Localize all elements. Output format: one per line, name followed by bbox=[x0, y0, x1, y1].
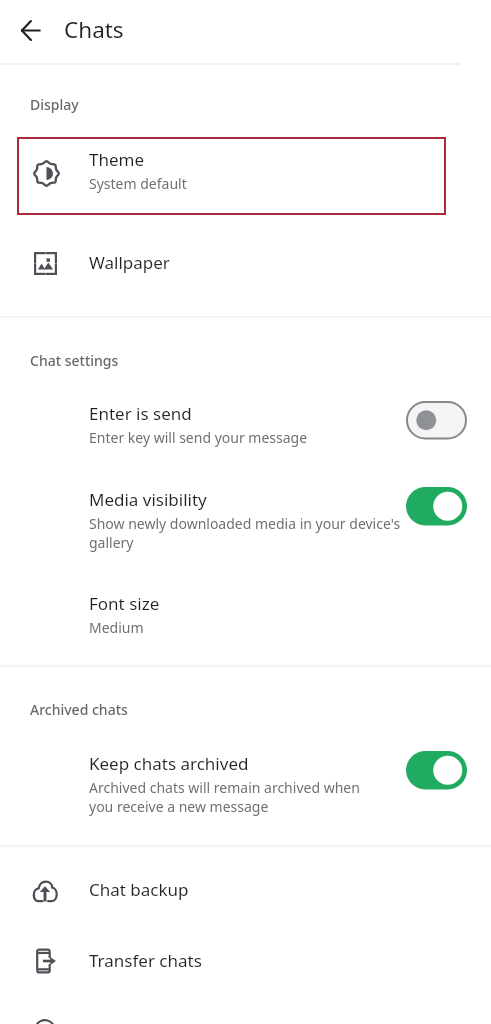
staticText: Chat backup bbox=[89, 878, 189, 901]
staticText: Archived chats bbox=[30, 700, 128, 719]
staticText: Medium bbox=[89, 618, 144, 637]
button[interactable]: Back bbox=[10, 10, 50, 50]
button[interactable]: Enter is send bbox=[0, 397, 491, 459]
button[interactable]: Chat backup bbox=[0, 861, 491, 923]
button[interactable]: Chat history bbox=[0, 1001, 491, 1024]
staticText: Enter is send bbox=[89, 402, 192, 425]
staticText: Font size bbox=[89, 592, 160, 615]
staticText: Transfer chats bbox=[89, 949, 202, 972]
staticText: Archived chats will remain archived when… bbox=[89, 778, 360, 816]
button[interactable]: Font size bbox=[0, 587, 491, 649]
button[interactable]: Wallpaper bbox=[0, 232, 491, 294]
staticText: Chats bbox=[64, 14, 124, 45]
button[interactable]: Transfer chats bbox=[0, 932, 491, 994]
staticText: Theme bbox=[89, 148, 145, 171]
staticText: System default bbox=[89, 174, 187, 193]
button[interactable]: Keep chats archived bbox=[0, 747, 491, 829]
button[interactable]: Media visibility bbox=[0, 483, 491, 563]
staticText: Display bbox=[30, 95, 79, 114]
staticText: Enter key will send your message bbox=[89, 428, 308, 447]
button[interactable]: Theme bbox=[17, 137, 446, 215]
staticText: Media visibility bbox=[89, 488, 207, 511]
staticText: Keep chats archived bbox=[89, 752, 249, 775]
staticText: Show newly downloaded media in your devi… bbox=[89, 514, 401, 552]
staticText: Wallpaper bbox=[89, 251, 170, 274]
staticText: Chat settings bbox=[30, 351, 119, 370]
